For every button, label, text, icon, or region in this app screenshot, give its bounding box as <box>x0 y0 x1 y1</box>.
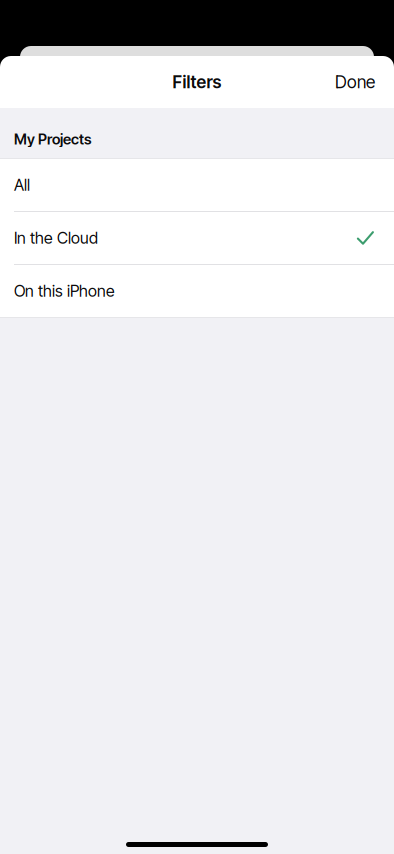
staticText: All <box>14 175 30 195</box>
staticText: My Projects <box>14 130 91 148</box>
button[interactable]: Done <box>326 63 384 100</box>
button[interactable]: On this iPhone <box>0 265 394 317</box>
staticText: Done <box>335 71 375 92</box>
staticText: In the Cloud <box>14 228 98 248</box>
staticText: On this iPhone <box>14 281 115 301</box>
button[interactable]: All <box>0 159 394 211</box>
button[interactable]: In the Cloud <box>0 212 394 264</box>
staticText: Filters <box>172 71 221 92</box>
